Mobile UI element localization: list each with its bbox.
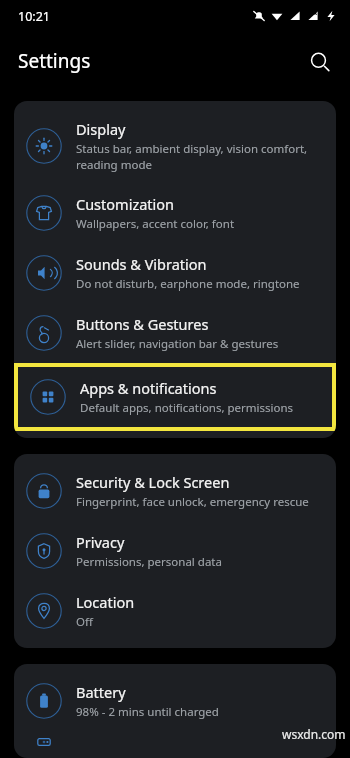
- staticText: Privacy: [76, 532, 125, 552]
- staticText: Alert slider, navigation bar & gestures: [76, 336, 279, 352]
- button[interactable]: Display: [14, 108, 336, 183]
- staticText: Customization: [76, 194, 175, 214]
- staticText: Settings: [18, 48, 91, 74]
- staticText: Location: [76, 592, 135, 612]
- staticText: Permissions, personal data: [76, 554, 222, 570]
- button[interactable]: Sounds & Vibration: [14, 243, 336, 303]
- staticText: Apps & notifications: [80, 378, 217, 398]
- staticText: Buttons & Gestures: [76, 314, 209, 334]
- staticText: 10:21: [18, 8, 50, 25]
- staticText: Default apps, notifications, permissions: [80, 400, 294, 416]
- staticText: Status bar, ambient display, vision comf…: [76, 141, 308, 172]
- button[interactable]: Battery: [14, 671, 336, 731]
- button[interactable]: Customization: [14, 183, 336, 243]
- staticText: Off: [76, 614, 93, 630]
- staticText: Fingerprint, face unlock, emergency resc…: [76, 494, 309, 510]
- staticText: Do not disturb, earphone mode, ringtone: [76, 276, 300, 292]
- staticText: wsxdn.com: [282, 726, 346, 742]
- staticText: Battery: [76, 682, 126, 702]
- staticText: Display: [76, 119, 126, 139]
- staticText: Sounds & Vibration: [76, 254, 207, 274]
- button[interactable]: Buttons & Gestures: [14, 303, 336, 363]
- button[interactable]: Location: [14, 581, 336, 641]
- button[interactable]: Storage: [14, 731, 336, 751]
- staticText: Wallpapers, accent color, font: [76, 216, 235, 232]
- button[interactable]: Security & Lock Screen: [14, 461, 336, 521]
- button[interactable]: Privacy: [14, 521, 336, 581]
- staticText: 98% - 2 mins until charged: [76, 704, 219, 720]
- button[interactable]: Apps & notifications: [18, 367, 332, 427]
- button[interactable]: Search: [298, 40, 340, 82]
- staticText: Security & Lock Screen: [76, 472, 230, 492]
